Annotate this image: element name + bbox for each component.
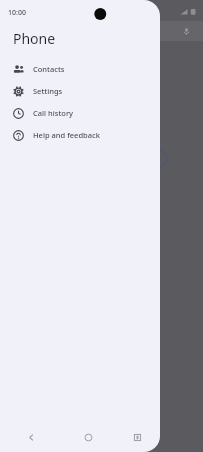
staticText: Help and feedback <box>33 130 100 140</box>
staticText: Call history <box>33 108 74 118</box>
button[interactable]: Call history <box>0 102 160 124</box>
button[interactable]: Contacts <box>0 58 160 80</box>
button[interactable]: Home <box>62 422 115 452</box>
button[interactable]: Recent apps <box>115 422 160 452</box>
button[interactable]: Back <box>0 422 62 452</box>
button[interactable]: Voice search <box>147 21 203 41</box>
staticText: Phone <box>13 29 56 48</box>
staticText: Contacts <box>33 64 65 74</box>
button[interactable]: Settings <box>0 80 160 102</box>
staticText: Settings <box>33 86 63 96</box>
button[interactable]: Help and feedback <box>0 124 160 146</box>
staticText: 10:00 <box>8 8 26 18</box>
